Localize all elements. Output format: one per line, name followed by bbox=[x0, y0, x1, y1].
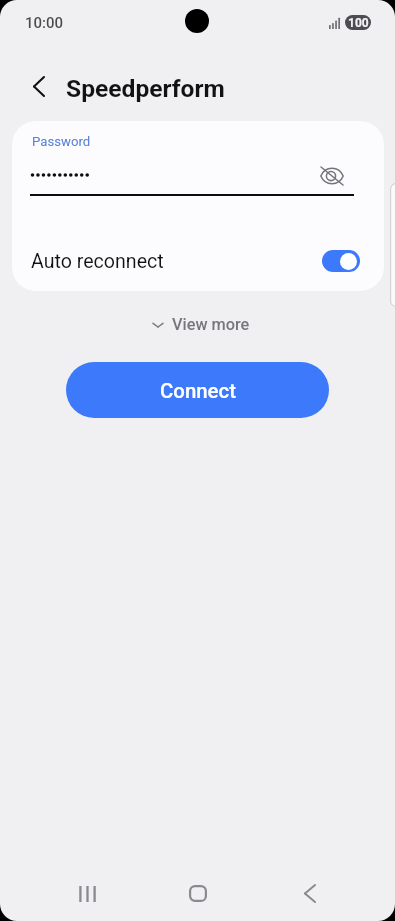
button[interactable]: Back bbox=[253, 866, 363, 921]
staticText: 100 bbox=[348, 16, 369, 30]
button[interactable]: Auto reconnect bbox=[12, 237, 384, 285]
staticText: 10:00 bbox=[25, 14, 64, 32]
button[interactable]: Show password bbox=[318, 162, 346, 190]
button[interactable]: Back bbox=[21, 69, 55, 103]
staticText: Connect bbox=[160, 379, 236, 403]
staticText: Speedperform bbox=[66, 74, 225, 103]
staticText: Password bbox=[32, 134, 91, 149]
staticText: View more bbox=[172, 315, 250, 334]
button[interactable]: Recents bbox=[32, 866, 143, 921]
button[interactable]: Home bbox=[143, 866, 253, 921]
button[interactable]: View more bbox=[143, 309, 260, 340]
staticText: Auto reconnect bbox=[31, 250, 164, 273]
button[interactable]: Connect bbox=[66, 362, 329, 418]
